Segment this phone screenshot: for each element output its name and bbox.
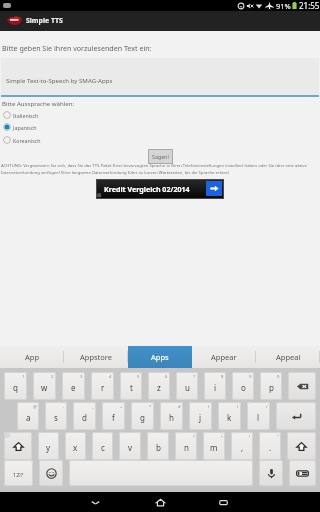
button[interactable]: Voice input — [259, 460, 283, 486]
button[interactable]: Appear — [192, 346, 256, 368]
staticText: Kredit Vergleich 02/2014 — [104, 184, 190, 194]
button[interactable]: q — [4, 372, 27, 400]
button[interactable]: , — [231, 432, 253, 460]
staticText: Koreanisch — [13, 137, 41, 144]
button[interactable]: a — [17, 402, 39, 430]
button[interactable]: . — [259, 432, 281, 460]
button[interactable]: h — [160, 402, 183, 430]
staticText: 7 — [193, 374, 196, 380]
staticText: w — [41, 382, 48, 393]
button[interactable]: k — [218, 402, 241, 430]
staticText: j — [199, 412, 202, 423]
button[interactable]: g — [131, 402, 154, 430]
button[interactable]: z — [148, 372, 170, 400]
staticText: / — [266, 404, 268, 410]
button[interactable]: p — [260, 372, 282, 400]
button[interactable]: i — [204, 372, 226, 400]
button[interactable]: 12!? — [4, 460, 33, 486]
button[interactable]: t — [120, 372, 142, 400]
staticText: * — [149, 404, 152, 410]
button[interactable]: r — [91, 372, 114, 400]
button[interactable]: l — [247, 402, 270, 430]
button[interactable]: Enter — [276, 402, 316, 430]
staticText: c — [101, 442, 105, 453]
staticText: e — [71, 382, 76, 393]
button[interactable]: c — [92, 432, 113, 460]
staticText: _ — [92, 404, 94, 410]
button[interactable]: App — [0, 346, 64, 368]
staticText: + — [120, 404, 123, 410]
staticText: Simple Text-to-Speech by SMAG-Apps — [6, 76, 113, 84]
staticText: Italienisch — [13, 112, 39, 119]
staticText: o — [241, 382, 246, 393]
staticText: Appstore — [80, 352, 113, 362]
staticText: k — [227, 412, 232, 423]
button[interactable]: j — [189, 402, 212, 430]
button[interactable]: e — [62, 372, 85, 400]
button[interactable]: Koreanisch — [0, 134, 320, 146]
button[interactable]: v — [119, 432, 141, 460]
staticText: ( — [208, 404, 210, 410]
button[interactable]: Simple Text-to-Speech by SMAG-Apps — [1, 58, 319, 97]
staticText: Appear — [211, 352, 237, 362]
button[interactable]: b — [147, 432, 169, 460]
button[interactable]: x — [65, 432, 86, 460]
button[interactable]: Recent apps — [207, 492, 239, 512]
staticText: 9 — [249, 374, 252, 380]
button[interactable]: Italienisch — [0, 109, 320, 121]
button[interactable]: o — [232, 372, 254, 400]
staticText: l — [257, 412, 260, 423]
button[interactable]: f — [102, 402, 125, 430]
button[interactable]: y — [38, 432, 59, 460]
staticText: 1 — [22, 374, 25, 380]
button[interactable] — [69, 460, 253, 486]
staticText: Bitte geben Sie ihren vorzulesenden Text… — [2, 43, 152, 53]
button[interactable]: Back — [79, 492, 111, 512]
staticText: Sagen! — [152, 153, 169, 160]
staticText: t — [130, 382, 133, 393]
staticText: \ — [221, 434, 223, 440]
staticText: m — [210, 442, 218, 453]
staticText: h — [169, 412, 174, 423]
staticText: , — [241, 442, 244, 453]
button[interactable]: Kredit Vergleich 02/2014 — [96, 179, 224, 199]
staticText: y — [46, 442, 51, 453]
staticText: g — [140, 412, 145, 423]
staticText: 8 — [221, 374, 224, 380]
staticText: ACHTUNG: Vergewissern Sie sich, dass Sie… — [1, 163, 319, 175]
staticText: ) — [237, 404, 239, 410]
staticText: f — [112, 412, 115, 423]
staticText: 0 — [277, 374, 280, 380]
button[interactable]: n — [175, 432, 197, 460]
button[interactable]: m — [203, 432, 225, 460]
button[interactable]: Home — [144, 492, 176, 512]
staticText: Japanisch — [13, 124, 37, 131]
button[interactable]: s — [45, 402, 67, 430]
staticText: i — [214, 382, 217, 393]
button[interactable]: Change keyboard — [289, 460, 316, 486]
staticText: p — [269, 382, 274, 393]
button[interactable]: Open advert — [206, 181, 222, 196]
staticText: App — [25, 352, 40, 362]
staticText: Apps — [151, 352, 169, 362]
button[interactable]: Shift — [4, 432, 32, 460]
button[interactable]: w — [33, 372, 56, 400]
staticText: - — [63, 404, 65, 410]
button[interactable]: d — [73, 402, 96, 430]
button[interactable]: Shift — [287, 432, 316, 460]
button[interactable]: u — [176, 372, 198, 400]
staticText: ! — [249, 434, 251, 440]
button[interactable]: Sagen! — [148, 149, 173, 164]
staticText: " — [277, 434, 279, 440]
button[interactable]: Backspace — [288, 372, 316, 400]
button[interactable]: Japanisch — [0, 121, 320, 133]
staticText: # — [178, 404, 181, 410]
staticText: . — [269, 442, 272, 453]
button[interactable]: Appstore — [64, 346, 128, 368]
button[interactable]: Appeal — [256, 346, 320, 368]
staticText: 2 — [51, 374, 54, 380]
staticText: 21:55 — [299, 0, 320, 11]
button[interactable]: Apps — [128, 346, 192, 368]
button[interactable]: Emoji — [39, 460, 63, 486]
staticText: z — [157, 382, 161, 393]
